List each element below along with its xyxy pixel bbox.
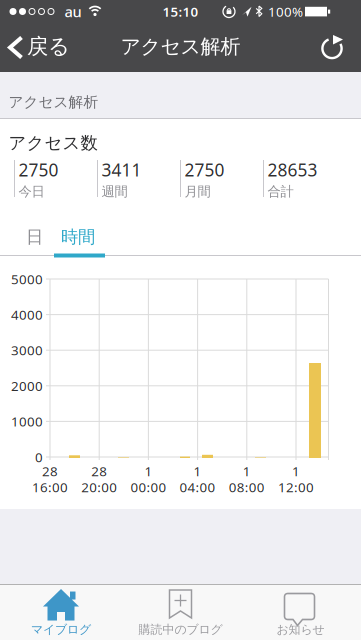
staticText: 12:00 bbox=[278, 478, 314, 496]
staticText: 4000 bbox=[11, 306, 43, 323]
staticText: 合計 bbox=[267, 183, 293, 200]
staticText: 28 bbox=[91, 462, 107, 480]
staticText: 100% bbox=[268, 3, 303, 20]
staticText: 20:00 bbox=[81, 478, 117, 496]
staticText: 04:00 bbox=[180, 478, 216, 496]
staticText: 1 bbox=[194, 462, 202, 480]
staticText: 時間 bbox=[61, 226, 95, 248]
staticText: 0 bbox=[35, 448, 43, 466]
staticText: 16:00 bbox=[32, 478, 68, 496]
staticText: 戻る bbox=[27, 33, 70, 60]
staticText: 28 bbox=[42, 462, 58, 480]
staticText: 2750 bbox=[184, 158, 224, 181]
staticText: アクセス解析 bbox=[120, 34, 240, 59]
staticText: 購読中のブログ bbox=[138, 622, 222, 637]
staticText: アクセス解析 bbox=[8, 93, 98, 111]
staticText: 2750 bbox=[18, 158, 58, 181]
staticText: 1000 bbox=[11, 412, 43, 430]
staticText: 15:10 bbox=[162, 3, 198, 20]
staticText: au bbox=[64, 2, 81, 21]
staticText: 日 bbox=[26, 226, 43, 248]
staticText: 1 bbox=[292, 462, 300, 480]
staticText: 1 bbox=[243, 462, 251, 480]
staticText: 5000 bbox=[11, 270, 43, 288]
staticText: 月間 bbox=[184, 183, 210, 200]
staticText: 2000 bbox=[11, 377, 43, 395]
staticText: マイブログ bbox=[31, 622, 91, 637]
staticText: アクセス数 bbox=[8, 132, 97, 154]
staticText: 08:00 bbox=[229, 478, 265, 496]
staticText: 28653 bbox=[267, 158, 317, 181]
staticText: 3000 bbox=[11, 341, 43, 359]
staticText: 週間 bbox=[101, 183, 127, 200]
staticText: お知らせ bbox=[276, 622, 324, 637]
staticText: 00:00 bbox=[130, 478, 166, 496]
staticText: 3411 bbox=[101, 158, 141, 181]
staticText: 1 bbox=[144, 462, 152, 480]
staticText: 今日 bbox=[18, 183, 44, 200]
